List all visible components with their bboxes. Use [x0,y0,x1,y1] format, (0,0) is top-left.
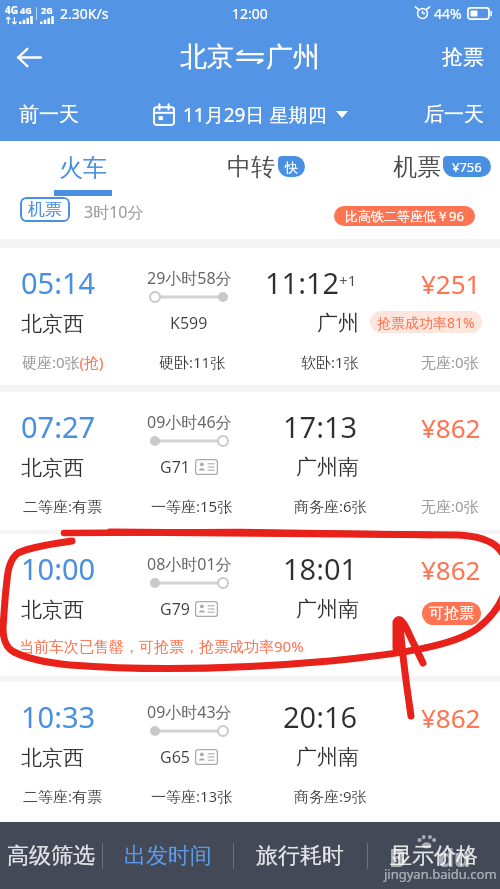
staticText: 北京西 [21,311,84,337]
staticText: 商务座:9张 [294,786,367,806]
staticText: 机票 [393,152,441,182]
staticText: 二等座:有票 [23,786,103,806]
staticText: 3时10分 [84,201,144,223]
staticText: 一等座:13张 [151,786,233,806]
staticText: 二等座:有票 [23,496,103,516]
staticText: 高级筛选 [7,842,95,870]
staticText: 商务座:6张 [294,496,367,516]
staticText: B du [389,840,471,874]
button[interactable]: 10:33 [0,682,500,822]
staticText: 17:13 [283,407,358,446]
staticText: 20:16 [283,697,358,736]
button[interactable]: 05:14 [0,248,500,385]
staticText: 无座:0张 [421,496,479,516]
staticText: 北京西 [21,597,84,623]
button[interactable]: 中转 [216,141,316,196]
staticText: 硬卧:11张 [159,352,226,372]
button[interactable]: 高级筛选 [0,822,102,889]
staticText: 10:33 [21,697,96,736]
staticText: 显示价格 [390,842,478,870]
staticText: 当前车次已售罄，可抢票，抢票成功率90% [19,636,304,656]
staticText: 火车 [59,153,107,183]
staticText: 2.30K/s [60,4,109,23]
staticText: 广州南 [296,596,359,622]
staticText: 2G [41,4,53,16]
staticText: 抢票 [442,44,484,70]
staticText: 11:12+1 [265,263,357,302]
button[interactable]: 11月29日 星期四 [145,88,356,141]
staticText: 18:01 [283,549,358,588]
button[interactable]: 抢票 [426,26,500,88]
button[interactable]: 旅行耗时 [233,822,367,889]
staticText: G71 [160,456,190,478]
staticText: 软卧:1张 [301,352,359,372]
button[interactable]: 火车 [28,141,138,196]
staticText: 广州南 [296,744,359,770]
button[interactable]: 机票 [20,197,70,222]
staticText: 旅行耗时 [256,842,344,870]
staticText: 12:00 [232,4,268,23]
staticText: 07:27 [21,407,96,446]
staticText: 10:00 [21,549,96,588]
staticText: 29小时58分 [147,267,232,289]
button[interactable]: 10:00 [0,534,500,676]
staticText: 广州 [317,310,359,336]
staticText: 09小时43分 [147,701,232,723]
staticText: 无座:0张 [421,352,479,372]
staticText: G65 [160,746,190,768]
staticText: 可抢票 [429,604,474,623]
staticText: 北京西 [21,745,84,771]
staticText: G79 [160,598,190,620]
staticText: 北京 [180,40,234,74]
staticText: jingyan.baidu.com [384,865,497,883]
staticText: 比高铁二等座低￥96 [345,207,464,225]
button[interactable]: 后一天 [408,88,500,141]
button[interactable]: 前一天 [0,88,95,141]
staticText: 抢票成功率81% [377,313,475,332]
button[interactable]: 出发时间 [102,822,233,889]
staticText: 一等座:15张 [151,496,233,516]
button[interactable]: Back [0,28,58,86]
staticText: 11月29日 星期四 [183,102,327,128]
staticText: 硬座:0张(抢) [22,352,104,372]
staticText: 广州 [266,40,320,74]
staticText: 广州南 [296,454,359,480]
staticText: 05:14 [21,263,96,302]
staticText: 08小时01分 [147,553,232,575]
staticText: 后一天 [424,102,484,127]
staticText: ¥862 [421,700,481,735]
staticText: 4G [5,3,18,17]
button[interactable]: 比高铁二等座低￥96 [334,206,475,226]
staticText: ¥862 [421,552,481,587]
staticText: 前一天 [19,102,79,127]
button[interactable]: 机票 [384,141,500,196]
staticText: 快 [285,159,298,175]
staticText: 机票 [28,199,62,220]
staticText: K599 [170,312,208,334]
staticText: 09小时46分 [147,411,232,433]
staticText: 44% [434,4,462,23]
staticText: 4G [20,4,32,16]
button[interactable]: 显示价格 [367,822,500,889]
staticText: 北京西 [21,455,84,481]
staticText: ¥251 [421,266,481,301]
staticText: 出发时间 [124,842,212,870]
button[interactable]: 07:27 [0,392,500,530]
staticText: 中转 [227,152,275,182]
staticText: ¥756 [452,158,482,176]
staticText: ¥862 [421,410,481,445]
